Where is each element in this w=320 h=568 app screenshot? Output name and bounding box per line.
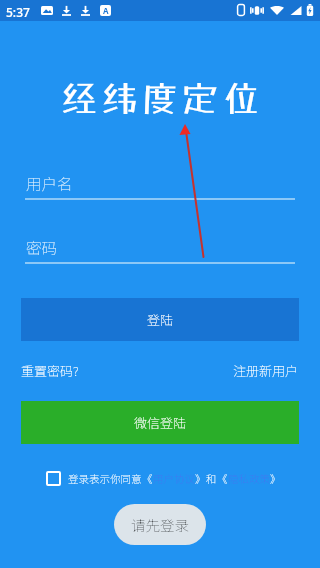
staticText: 用户名: [26, 172, 73, 194]
staticText: 》: [270, 471, 281, 486]
staticText: 隐私政策: [228, 471, 270, 486]
button[interactable]: Agree to terms checkbox: [46, 471, 61, 486]
staticText: 登录表示你同意: [68, 471, 142, 486]
button[interactable]: 重置密码?: [21, 361, 79, 380]
staticText: 和: [206, 471, 217, 486]
staticText: 5:37: [6, 4, 30, 20]
staticText: A: [103, 5, 109, 16]
staticText: 密码: [26, 236, 58, 258]
staticText: 《: [142, 471, 153, 486]
staticText: 请先登录: [131, 514, 189, 535]
staticText: 经纬度定位: [61, 77, 264, 119]
staticText: 》: [195, 471, 206, 486]
staticText: 微信登陆: [134, 413, 187, 432]
staticText: 用户协议: [153, 471, 195, 486]
button[interactable]: 《: [217, 471, 281, 486]
button[interactable]: 登陆: [21, 298, 299, 341]
staticText: 重置密码?: [21, 361, 79, 380]
staticText: 注册新用户: [233, 361, 299, 380]
staticText: 登陆: [147, 310, 174, 329]
button[interactable]: 注册新用户: [233, 361, 299, 380]
staticText: 《: [217, 471, 228, 486]
button[interactable]: 用户名: [26, 170, 296, 196]
button[interactable]: 《: [142, 471, 206, 486]
button[interactable]: 微信登陆: [21, 401, 299, 444]
button[interactable]: 密码: [26, 234, 296, 260]
